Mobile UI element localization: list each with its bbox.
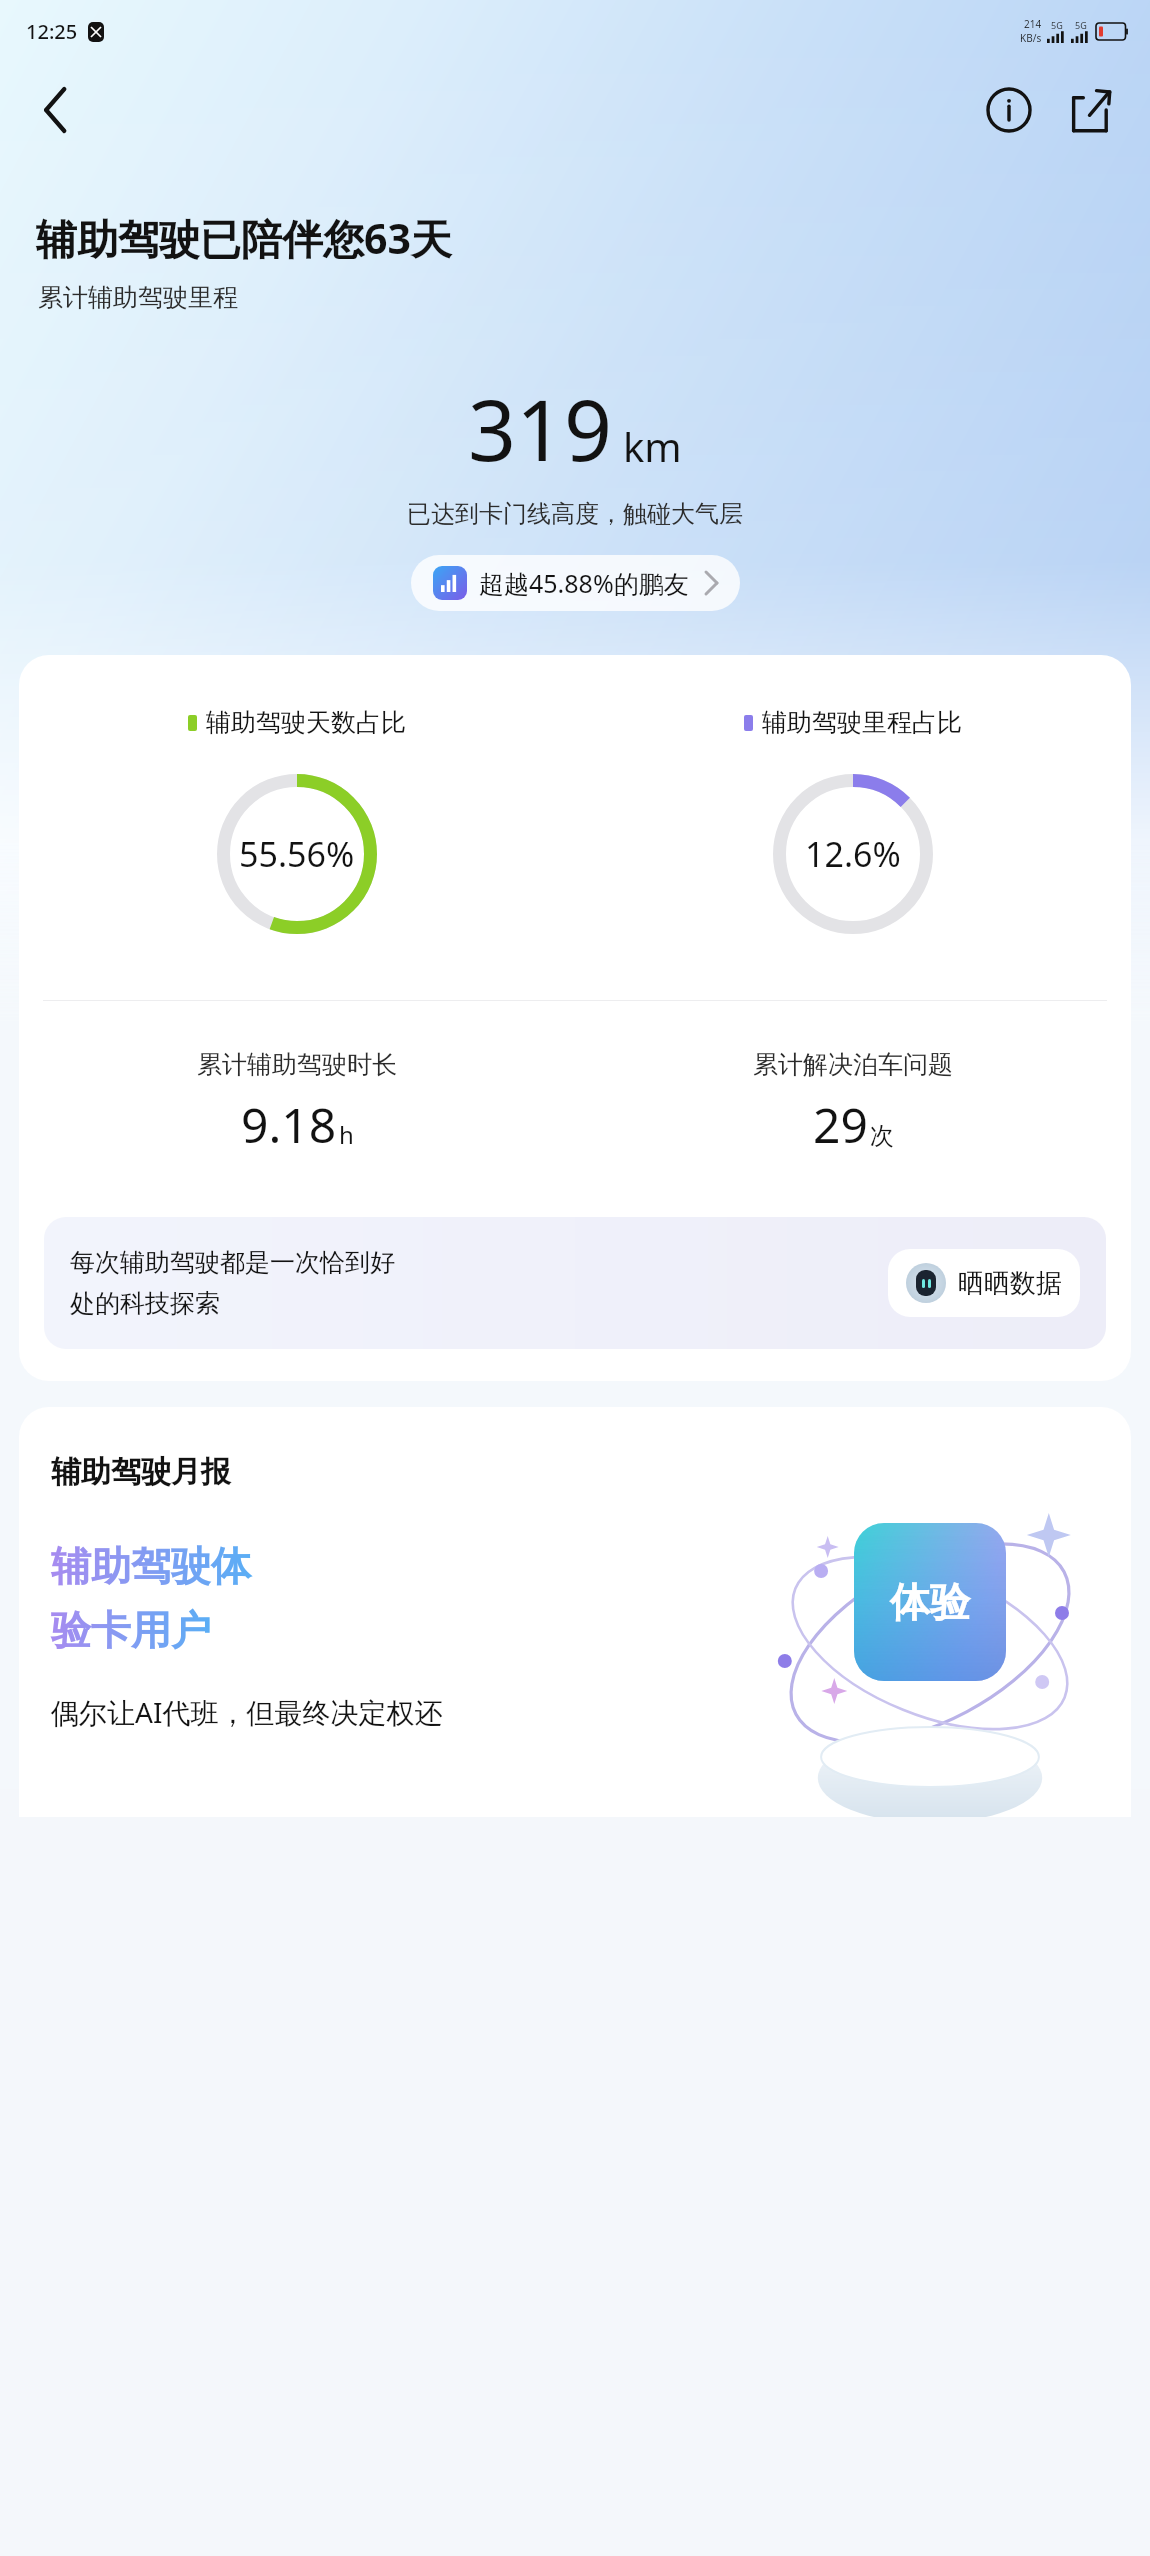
staticText: 累计辅助驾驶里程 [38,282,238,313]
staticText: 29 [813,1092,868,1157]
staticText: KB/s [1020,31,1042,45]
button[interactable]: Info [976,77,1042,143]
staticText: 5G [1075,19,1087,31]
staticText: 辅助驾驶已陪伴您63天 [36,210,452,266]
staticText: 偶尔让AI代班，但最终决定权还 [51,1693,443,1731]
staticText: 319 [468,371,613,485]
staticText: 处的科技探索 [70,1288,220,1319]
staticText: 每次辅助驾驶都是一次恰到好 [70,1247,395,1278]
staticText: 累计辅助驾驶时长 [197,1049,397,1080]
staticText: 体验 [890,1577,970,1627]
staticText: 已达到卡门线高度，触碰大气层 [0,499,1150,529]
staticText: 辅助驾驶体 [51,1541,251,1591]
staticText: 辅助驾驶里程占比 [762,707,962,738]
button[interactable]: 超越45.88%的鹏友 [411,555,740,611]
staticText: 9.18 [241,1092,337,1157]
staticText: 5G [1051,19,1063,31]
staticText: 超越45.88%的鹏友 [479,566,689,600]
staticText: h [339,1118,354,1151]
staticText: km [623,419,682,473]
staticText: 次 [870,1121,894,1151]
button[interactable]: 每次辅助驾驶都是一次恰到好 [44,1217,1106,1349]
button[interactable]: 辅助驾驶月报 [19,1407,1131,1817]
button[interactable]: Share [1060,77,1126,143]
staticText: 214 [1024,17,1042,31]
staticText: 验卡用户 [51,1605,211,1655]
staticText: 55.56% [239,831,355,877]
staticText: 12.6% [805,831,901,877]
staticText: 12:25 [26,18,78,45]
staticText: 辅助驾驶月报 [51,1453,231,1491]
staticText: 累计解决泊车问题 [753,1049,953,1080]
staticText: 晒晒数据 [958,1267,1062,1300]
button[interactable]: Back [22,76,90,144]
button[interactable]: 晒晒数据 [888,1249,1080,1317]
staticText: 辅助驾驶天数占比 [206,707,406,738]
